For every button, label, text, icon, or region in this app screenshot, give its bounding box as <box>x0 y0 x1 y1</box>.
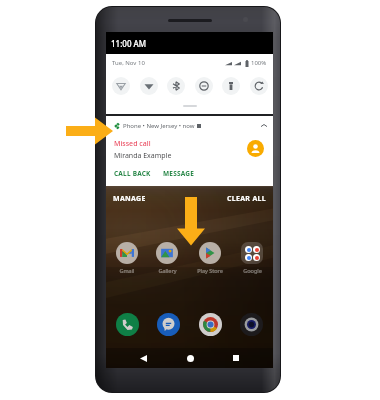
button[interactable]: Gmail <box>116 242 138 274</box>
button[interactable]: Flashlight <box>222 77 240 95</box>
button[interactable]: Recents <box>227 349 245 367</box>
staticText: 100% <box>251 59 267 67</box>
button[interactable]: Play Store <box>197 242 223 274</box>
button[interactable]: CLEAR ALL <box>227 194 266 204</box>
staticText: Missed call <box>114 139 151 149</box>
button[interactable]: MESSAGE <box>163 169 195 178</box>
button[interactable]: MANAGE <box>113 194 146 204</box>
button[interactable]: CALL BACK <box>114 169 151 178</box>
staticText: 11:00 AM <box>111 38 147 49</box>
staticText: Play Store <box>197 267 223 274</box>
button[interactable]: Chrome <box>199 313 222 336</box>
staticText: Miranda Example <box>114 151 172 161</box>
button[interactable]: Do not disturb <box>195 77 213 95</box>
button[interactable]: Messages <box>157 313 180 336</box>
staticText: Gallery <box>158 267 177 274</box>
button[interactable]: Internet <box>112 77 130 95</box>
staticText: Gmail <box>119 267 135 274</box>
button[interactable]: Home <box>181 349 199 367</box>
button[interactable]: Gallery <box>156 242 178 274</box>
staticText: Tue, Nov 10 <box>112 59 145 67</box>
button[interactable]: Back <box>134 349 152 367</box>
staticText: Google <box>243 267 262 274</box>
button[interactable]: Auto-rotate <box>250 77 268 95</box>
button[interactable]: Bluetooth <box>167 77 185 95</box>
staticText: Phone • New Jersey • now <box>123 122 195 130</box>
button[interactable]: Google <box>241 242 263 274</box>
button[interactable]: Phone <box>116 313 139 336</box>
button[interactable]: Wi-Fi <box>140 77 158 95</box>
button[interactable]: Camera <box>240 313 263 336</box>
